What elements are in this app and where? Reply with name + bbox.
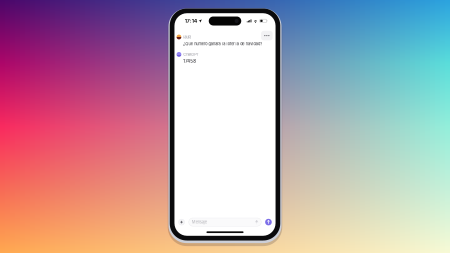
button[interactable]: Dictate: [254, 220, 259, 224]
button[interactable]: Add attachment: [178, 219, 185, 225]
staticText: 17:14: [185, 18, 198, 24]
staticText: Mensaje: [192, 220, 207, 225]
button[interactable]: More options: [261, 31, 273, 40]
staticText: ChatGPT: [183, 52, 199, 57]
staticText: 17458: [183, 59, 196, 64]
staticText: ¿Qué número ganará la lotería de navidad…: [183, 42, 262, 46]
staticText: laura: [183, 35, 191, 39]
button[interactable]: Send: [265, 219, 272, 225]
